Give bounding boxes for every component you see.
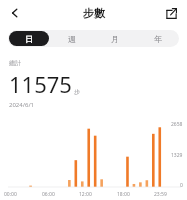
staticText: 11575 <box>9 69 72 99</box>
staticText: 12:00 <box>79 191 92 198</box>
staticText: 0 <box>180 182 183 189</box>
button[interactable]: 月 <box>94 31 135 46</box>
button[interactable]: 年 <box>137 31 178 46</box>
staticText: 步 <box>74 88 80 96</box>
staticText: 年 <box>154 34 162 44</box>
staticText: 18:00 <box>117 191 130 198</box>
button[interactable]: Back <box>4 2 26 24</box>
button[interactable]: Share <box>160 2 182 24</box>
staticText: 月 <box>111 34 119 44</box>
staticText: 23:59 <box>154 191 167 198</box>
staticText: 週 <box>68 34 76 44</box>
staticText: 步數 <box>83 6 105 20</box>
staticText: 00:00 <box>4 191 17 198</box>
button[interactable]: 週 <box>51 31 92 46</box>
staticText: 2024/6/1 <box>9 101 35 109</box>
staticText: 1329 <box>171 152 183 159</box>
staticText: 總計 <box>9 59 21 67</box>
staticText: 2658 <box>171 121 183 128</box>
staticText: 日 <box>25 34 33 44</box>
button[interactable]: 日 <box>9 31 49 46</box>
staticText: 06:00 <box>42 191 55 198</box>
